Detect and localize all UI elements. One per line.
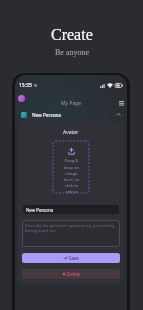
button[interactable]: Save <box>22 253 120 263</box>
staticText: My Page <box>61 100 82 107</box>
button[interactable]: Menu <box>118 100 124 106</box>
button[interactable]: Delete <box>22 269 120 279</box>
other: Collapse <box>116 112 121 117</box>
staticText: 15:35 <box>19 82 32 89</box>
staticText: New Persona <box>32 112 61 118</box>
staticText: Avatar <box>63 129 79 136</box>
button[interactable]: Profile <box>18 95 25 102</box>
staticText: Save <box>69 255 79 261</box>
staticText: Be anyone <box>55 48 89 57</box>
staticText: Drag & drop an image here, or click to s… <box>62 158 81 193</box>
staticText: Create <box>51 26 93 44</box>
staticText: Describe the persona's appearance, perso… <box>25 223 117 233</box>
staticText: New Persona <box>26 207 54 213</box>
staticText: Delete <box>67 271 81 277</box>
button[interactable]: Describe the persona's appearance, perso… <box>22 220 120 247</box>
button[interactable]: Upload avatar image <box>53 141 89 193</box>
button[interactable]: New Persona <box>21 107 121 122</box>
button[interactable]: New Persona <box>23 205 119 214</box>
